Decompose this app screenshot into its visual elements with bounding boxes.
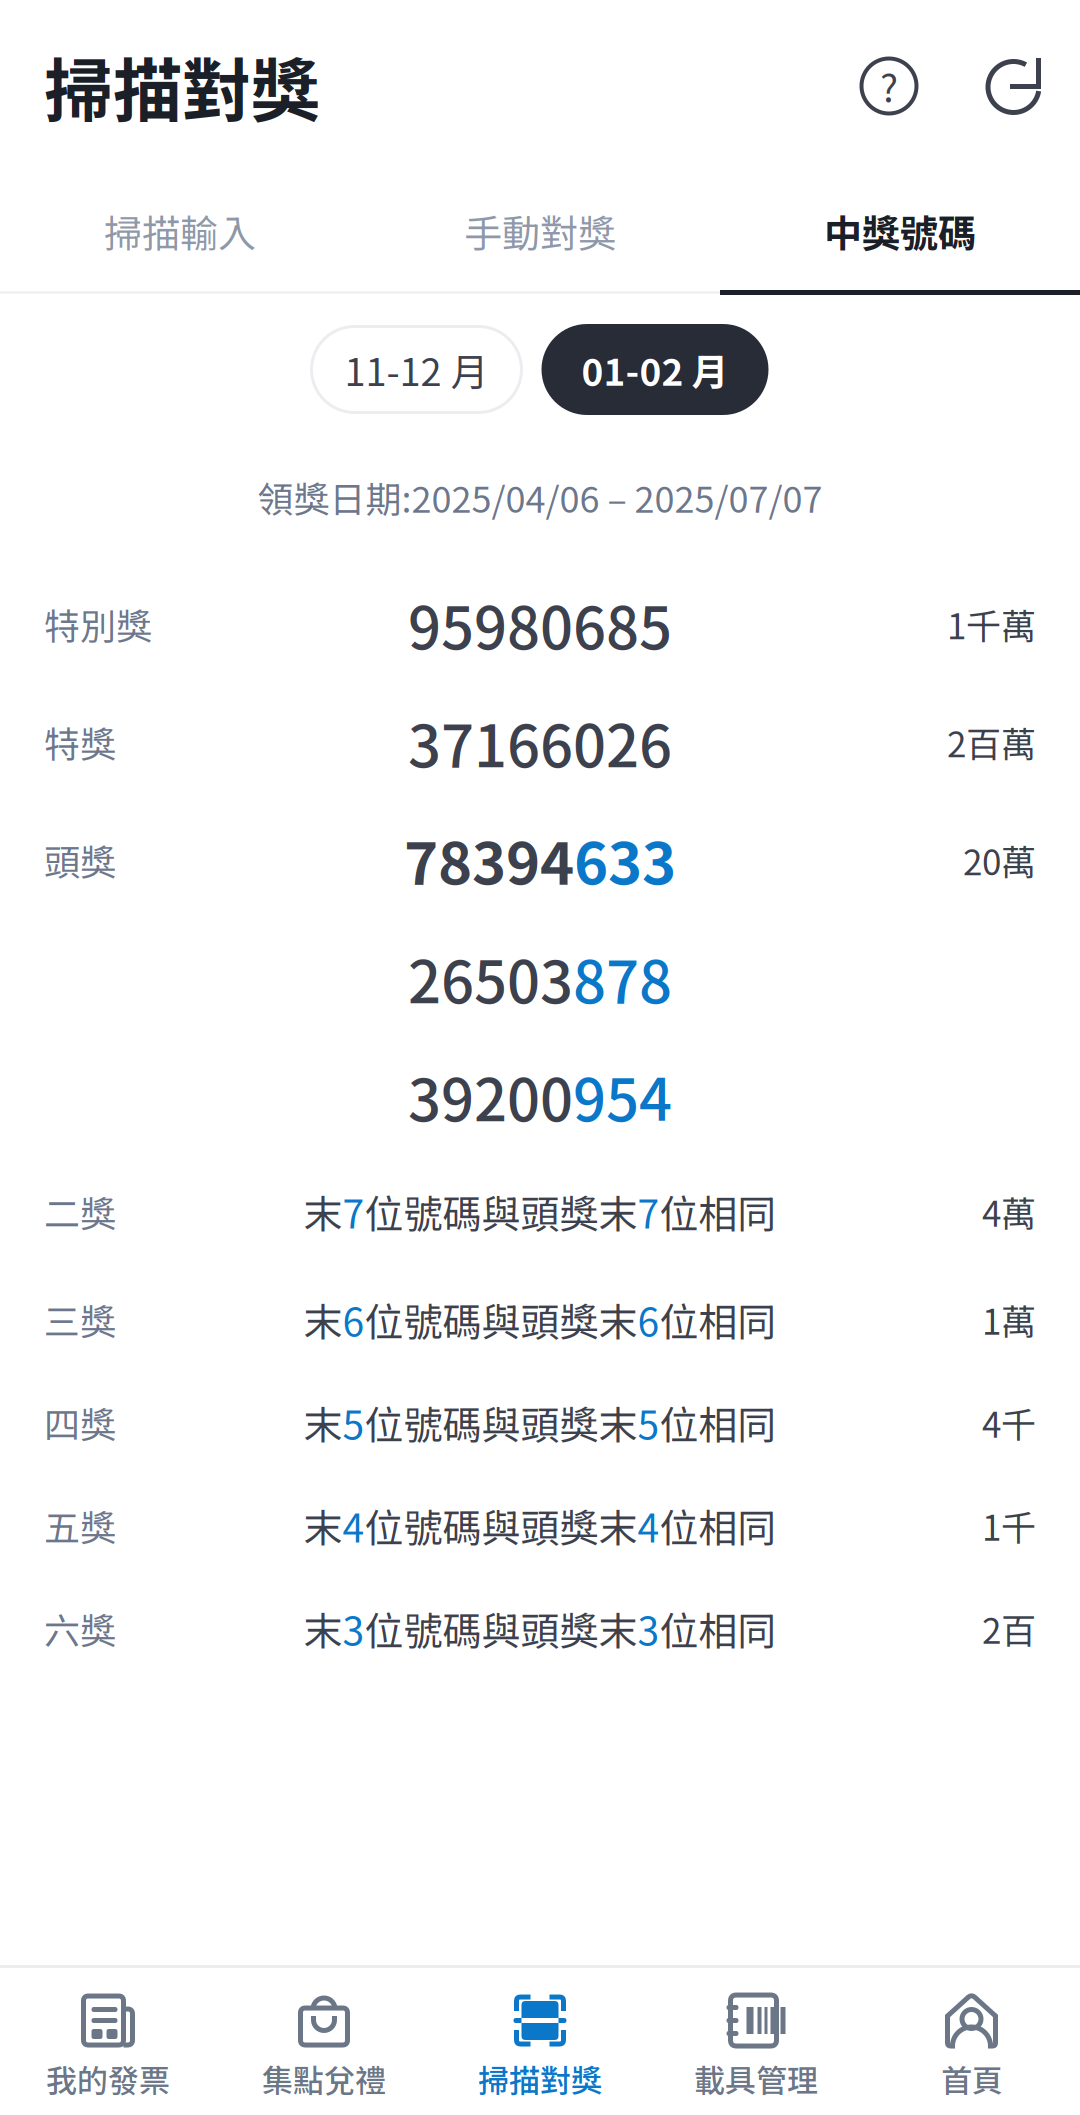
staticText: 掃描對獎 [44, 36, 320, 136]
staticText: 三獎 [44, 1293, 116, 1345]
staticText: 5 [637, 1394, 659, 1451]
button[interactable]: 掃描對獎 [432, 1968, 648, 2115]
staticText: 位號碼與頭獎末 [364, 1497, 637, 1554]
staticText: 3 [637, 1600, 659, 1657]
staticText: 2百 [982, 1603, 1036, 1654]
staticText: 26503 [408, 936, 573, 1020]
staticText: 位相同 [659, 1497, 776, 1554]
button[interactable]: 載具管理 [648, 1968, 864, 2115]
staticText: 四獎 [44, 1396, 116, 1448]
staticText: 位相同 [659, 1291, 776, 1348]
staticText: 特別獎 [44, 598, 152, 650]
staticText: 1萬 [982, 1294, 1036, 1345]
button[interactable]: 01-02 月 [541, 324, 768, 415]
staticText: 末 [303, 1600, 342, 1657]
staticText: 4千 [982, 1397, 1036, 1448]
staticText: 末 [303, 1291, 342, 1348]
staticText: 4 [342, 1497, 364, 1554]
button[interactable]: 中獎號碼 [720, 172, 1080, 290]
staticText: 4萬 [982, 1186, 1036, 1237]
staticText: 位相同 [659, 1183, 776, 1240]
button[interactable]: 掃描輸入 [0, 172, 360, 290]
staticText: 位號碼與頭獎末 [364, 1600, 637, 1657]
staticText: 二獎 [44, 1185, 116, 1237]
staticText: 633 [574, 818, 676, 902]
staticText: 五獎 [44, 1499, 116, 1551]
button[interactable]: 我的發票 [0, 1968, 216, 2115]
staticText: 01-02 月 [581, 343, 728, 396]
staticText: 我的發票 [46, 2056, 170, 2101]
staticText: ? [880, 58, 898, 113]
staticText: 位號碼與頭獎末 [364, 1394, 637, 1451]
staticText: 末 [303, 1497, 342, 1554]
staticText: 78394 [404, 818, 574, 902]
staticText: 95980685 [408, 582, 672, 666]
button[interactable]: 說明 [853, 50, 925, 122]
staticText: 7 [342, 1183, 364, 1240]
staticText: 六獎 [44, 1602, 116, 1654]
button[interactable]: 首頁 [864, 1968, 1080, 2115]
staticText: 特獎 [44, 716, 116, 768]
staticText: 領獎日期:2025/04/06 – 2025/07/07 [257, 471, 822, 523]
button[interactable]: 11-12 月 [311, 326, 521, 412]
staticText: 20萬 [963, 835, 1036, 885]
button[interactable]: 集點兌禮 [216, 1968, 432, 2115]
staticText: 位相同 [659, 1600, 776, 1657]
staticText: 集點兌禮 [262, 2056, 386, 2101]
staticText: 載具管理 [694, 2056, 818, 2101]
staticText: 5 [342, 1394, 364, 1451]
staticText: 39200 [408, 1054, 573, 1138]
staticText: 6 [637, 1291, 659, 1348]
staticText: 878 [573, 936, 672, 1020]
staticText: 1千萬 [947, 599, 1036, 649]
staticText: 手動對獎 [464, 203, 616, 258]
staticText: 3 [342, 1600, 364, 1657]
staticText: 4 [637, 1497, 659, 1554]
staticText: 1千 [982, 1500, 1036, 1551]
staticText: 位號碼與頭獎末 [364, 1291, 637, 1348]
staticText: 位相同 [659, 1394, 776, 1451]
staticText: 6 [342, 1291, 364, 1348]
staticText: 37166026 [408, 700, 672, 784]
staticText: 掃描輸入 [104, 203, 256, 258]
button[interactable]: 重新整理 [979, 50, 1051, 122]
staticText: 末 [303, 1394, 342, 1451]
staticText: 7 [637, 1183, 659, 1240]
staticText: 2百萬 [947, 717, 1036, 767]
staticText: 掃描對獎 [478, 2056, 602, 2101]
staticText: 954 [573, 1054, 672, 1138]
staticText: 11-12 月 [344, 342, 488, 397]
button[interactable]: 手動對獎 [360, 172, 720, 290]
staticText: 頭獎 [44, 834, 116, 886]
staticText: 末 [303, 1183, 342, 1240]
staticText: 中獎號碼 [824, 203, 976, 258]
staticText: 位號碼與頭獎末 [364, 1183, 637, 1240]
staticText: 首頁 [941, 2056, 1003, 2101]
